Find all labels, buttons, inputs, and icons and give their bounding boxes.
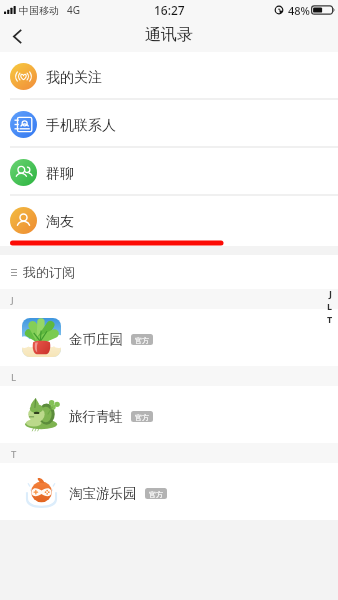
staticText: 群聊 (46, 165, 74, 183)
staticText: 官方 (135, 413, 149, 422)
staticText: T (327, 313, 333, 325)
staticText: T (11, 448, 17, 461)
staticText: 淘宝游乐园 (69, 485, 137, 502)
staticText: 旅行青蛙 (69, 408, 123, 425)
button[interactable]: 淘宝游乐园 (0, 463, 338, 520)
staticText: 手机联系人 (46, 117, 116, 135)
staticText: L (11, 371, 17, 384)
staticText: 中国移动 (19, 4, 59, 17)
staticText: 淘友 (46, 213, 74, 231)
button[interactable]: Back (2, 21, 32, 51)
staticText: 通讯录 (145, 25, 193, 45)
button[interactable]: 淘友 (0, 196, 338, 244)
staticText: J (329, 287, 332, 299)
staticText: 48% (288, 3, 310, 18)
staticText: 我的关注 (46, 69, 102, 87)
staticText: 4G (67, 3, 80, 17)
staticText: L (327, 300, 333, 312)
button[interactable]: 群聊 (0, 148, 338, 196)
button[interactable]: 旅行青蛙 (0, 386, 338, 443)
staticText: 16:27 (154, 2, 185, 18)
staticText: 我的订阅 (23, 264, 75, 280)
button[interactable]: 金币庄园 (0, 309, 338, 366)
button[interactable]: 手机联系人 (0, 100, 338, 148)
button[interactable]: 我的关注 (0, 52, 338, 100)
staticText: 官方 (135, 336, 149, 345)
staticText: 金币庄园 (69, 331, 123, 348)
staticText: J (11, 294, 14, 307)
staticText: 官方 (149, 490, 163, 499)
